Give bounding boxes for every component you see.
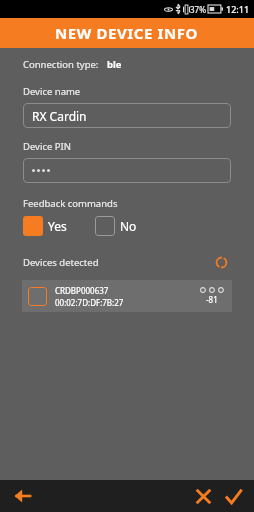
staticText: RX Cardin	[32, 108, 87, 124]
staticText: Yes	[48, 218, 67, 234]
staticText: Connection type:	[23, 58, 99, 71]
staticText: CRDBP000637	[55, 285, 109, 296]
staticText: No	[120, 218, 137, 234]
button[interactable]	[23, 158, 231, 183]
staticText: NEW DEVICE INFO	[55, 23, 199, 43]
button[interactable]: RX Cardin	[23, 103, 231, 128]
button[interactable]: Yes	[23, 216, 67, 236]
staticText: 00:02:7D:DF:7B:27	[55, 297, 124, 308]
staticText: ble	[107, 58, 122, 71]
staticText: Device name	[23, 85, 81, 98]
staticText: Devices detected	[23, 256, 99, 269]
button[interactable]: Refresh	[211, 252, 231, 272]
staticText: 12:11	[226, 3, 250, 15]
button[interactable]: No	[95, 216, 137, 236]
button[interactable]: CRDBP000637	[22, 280, 232, 312]
button[interactable]: Back	[8, 481, 38, 511]
staticText: Feedback commands	[23, 197, 118, 210]
staticText: 37%	[190, 4, 206, 15]
staticText: -81	[206, 294, 218, 305]
button[interactable]: Confirm	[218, 481, 248, 511]
staticText: Device PIN	[23, 140, 71, 153]
button[interactable]: Cancel	[188, 481, 218, 511]
